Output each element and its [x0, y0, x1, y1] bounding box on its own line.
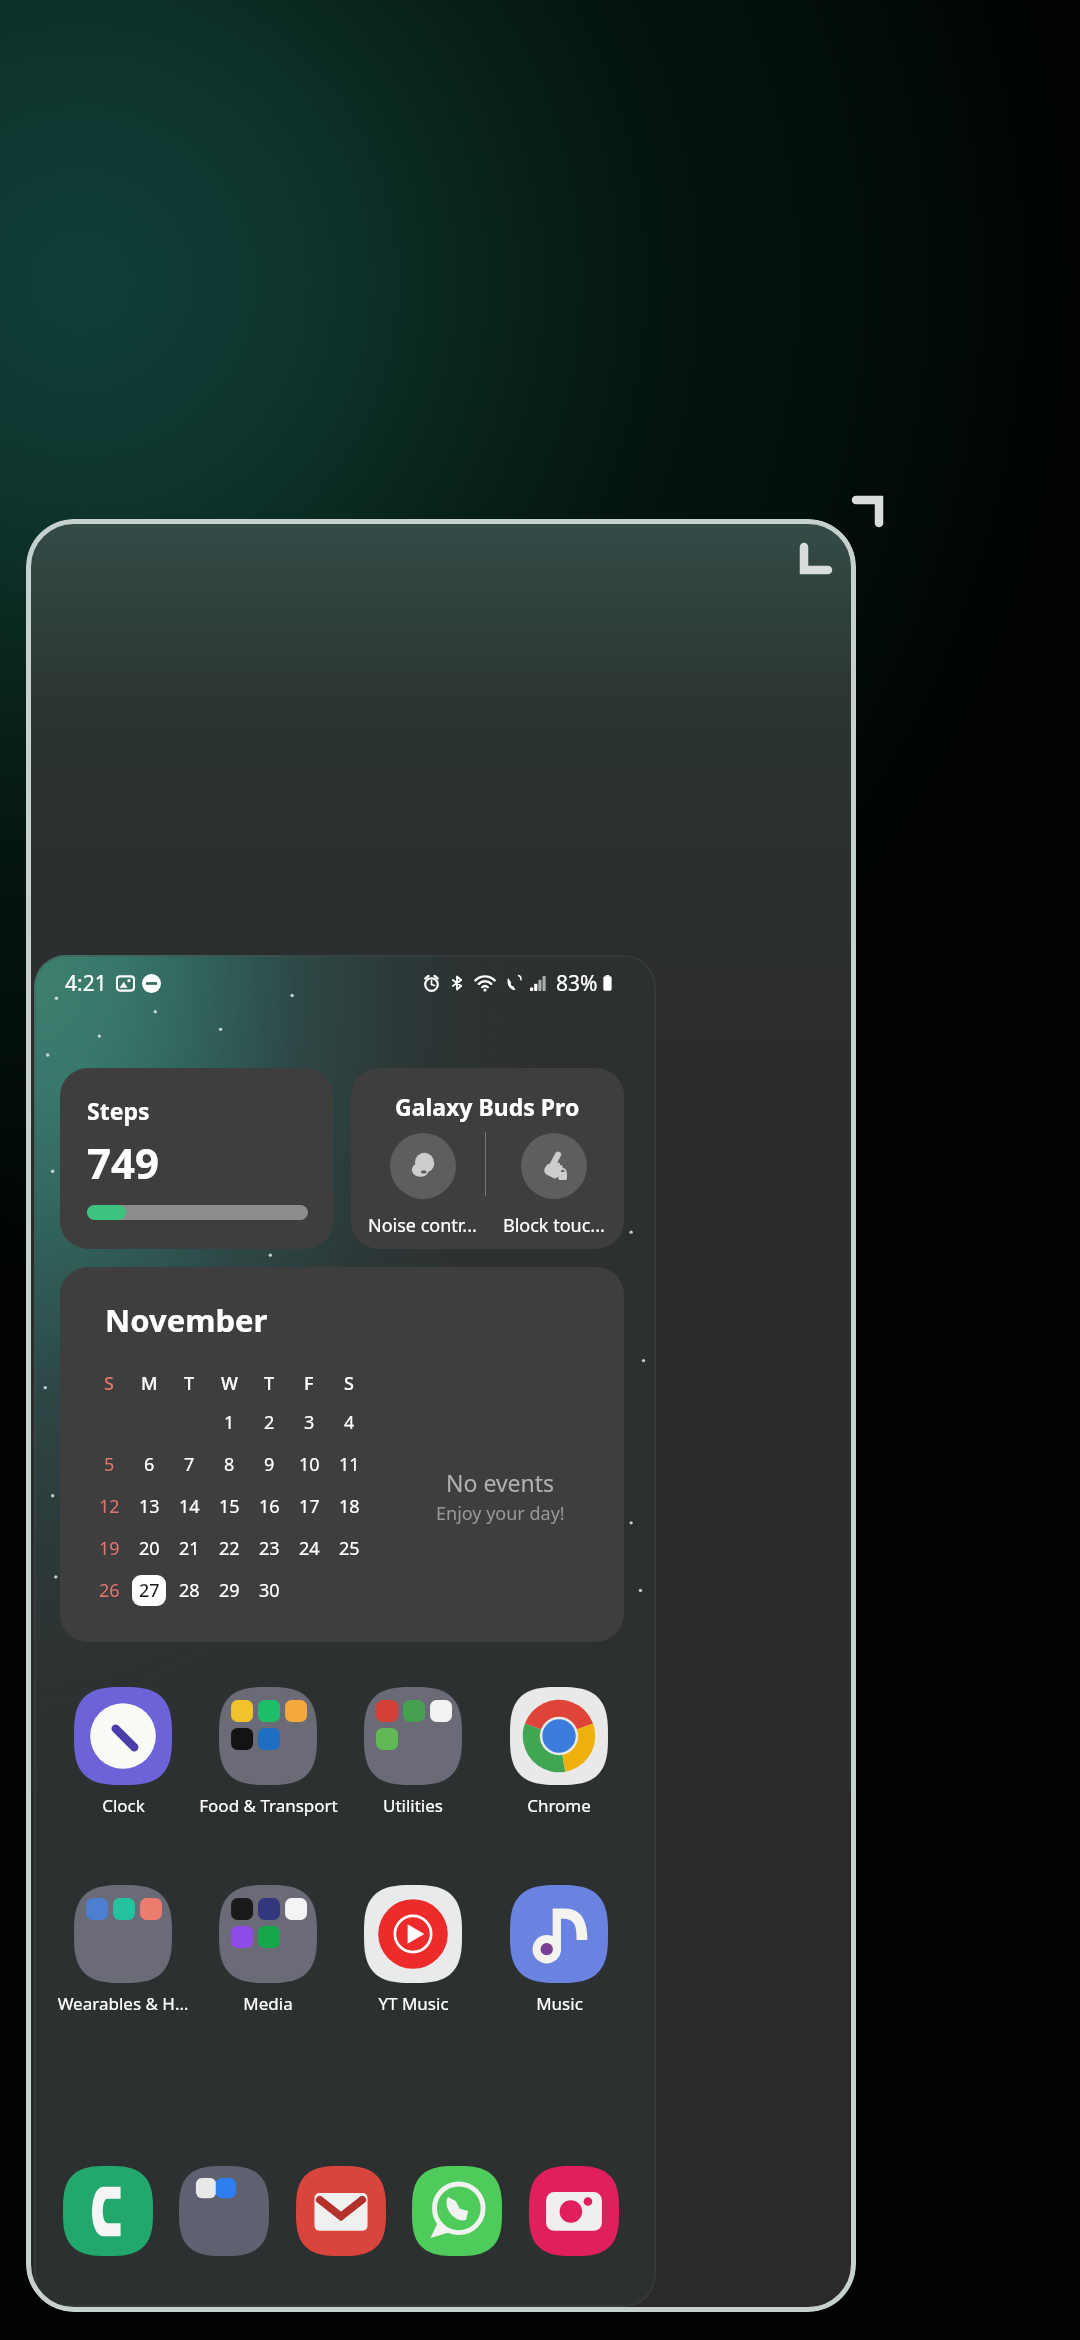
staticText: YT Music	[378, 1992, 449, 2015]
button[interactable]: WhatsApp	[412, 2166, 502, 2256]
button[interactable]: November	[60, 1267, 624, 1642]
button[interactable]: Noise control	[355, 1133, 490, 1238]
staticText: 18	[339, 1494, 360, 1519]
staticText: 8	[224, 1452, 235, 1477]
staticText: 3	[304, 1410, 315, 1435]
staticText: F	[304, 1371, 314, 1396]
button[interactable]: Music	[489, 1885, 629, 2015]
button[interactable]: Clock	[53, 1687, 193, 1817]
staticText: Enjoy your day!	[436, 1501, 565, 1526]
button[interactable]: Google folder	[179, 2166, 269, 2256]
staticText: 11	[339, 1452, 360, 1477]
staticText: Galaxy Buds Pro	[395, 1091, 580, 1122]
staticText: Noise contr...	[368, 1213, 477, 1238]
staticText: Food & Transport	[199, 1794, 338, 1817]
staticText: T	[264, 1371, 275, 1396]
staticText: 7	[184, 1452, 195, 1477]
staticText: Utilities	[383, 1794, 443, 1817]
staticText: S	[104, 1371, 114, 1396]
button[interactable]: Steps	[60, 1068, 333, 1249]
staticText: 23	[259, 1536, 280, 1561]
staticText: 16	[259, 1494, 280, 1519]
button[interactable]: Block touches	[486, 1133, 621, 1238]
staticText: 17	[299, 1494, 320, 1519]
staticText: 24	[299, 1536, 320, 1561]
staticText: 22	[219, 1536, 240, 1561]
staticText: Block touc...	[503, 1213, 605, 1238]
staticText: 30	[259, 1578, 280, 1603]
button[interactable]: Phone	[63, 2166, 153, 2256]
button[interactable]: Gmail	[296, 2166, 386, 2256]
button[interactable]: Utilities	[343, 1687, 483, 1817]
staticText: 12	[99, 1494, 120, 1519]
staticText: Music	[536, 1992, 583, 2015]
staticText: Media	[243, 1992, 293, 2015]
staticText: 14	[179, 1494, 200, 1519]
button[interactable]: Galaxy Buds Pro	[351, 1068, 624, 1249]
button[interactable]: Wearables & He...	[53, 1885, 193, 2015]
staticText: Chrome	[527, 1794, 591, 1817]
staticText: 6	[144, 1452, 155, 1477]
staticText: W	[221, 1371, 238, 1396]
button[interactable]: Media	[198, 1885, 338, 2015]
staticText: 20	[139, 1536, 160, 1561]
staticText: 28	[179, 1578, 200, 1603]
staticText: 29	[219, 1578, 240, 1603]
staticText: November	[105, 1299, 268, 1341]
staticText: 83%	[556, 969, 598, 998]
staticText: 19	[99, 1536, 120, 1561]
staticText: M	[141, 1371, 158, 1396]
staticText: Clock	[102, 1794, 145, 1817]
staticText: 27	[139, 1578, 160, 1603]
staticText: 2	[264, 1410, 275, 1435]
staticText: 21	[179, 1536, 200, 1561]
staticText: 13	[139, 1494, 160, 1519]
staticText: No events	[446, 1467, 555, 1498]
staticText: 25	[339, 1536, 360, 1561]
staticText: 10	[299, 1452, 320, 1477]
staticText: T	[184, 1371, 195, 1396]
staticText: 4:21	[65, 969, 107, 998]
staticText: S	[344, 1371, 354, 1396]
button[interactable]: YT Music	[343, 1885, 483, 2015]
staticText: 15	[219, 1494, 240, 1519]
staticText: Wearables & He...	[53, 1992, 193, 2015]
other: Crop handles	[790, 485, 900, 595]
staticText: Steps	[87, 1095, 150, 1126]
staticText: 749	[87, 1134, 160, 1191]
button[interactable]: Instagram	[529, 2166, 619, 2256]
staticText: 5	[104, 1452, 115, 1477]
staticText: 1	[224, 1410, 235, 1435]
button[interactable]: Chrome	[489, 1687, 629, 1817]
staticText: 4	[344, 1410, 355, 1435]
button[interactable]: Food & Transport	[198, 1687, 338, 1817]
staticText: 9	[264, 1452, 275, 1477]
staticText: 26	[99, 1578, 120, 1603]
